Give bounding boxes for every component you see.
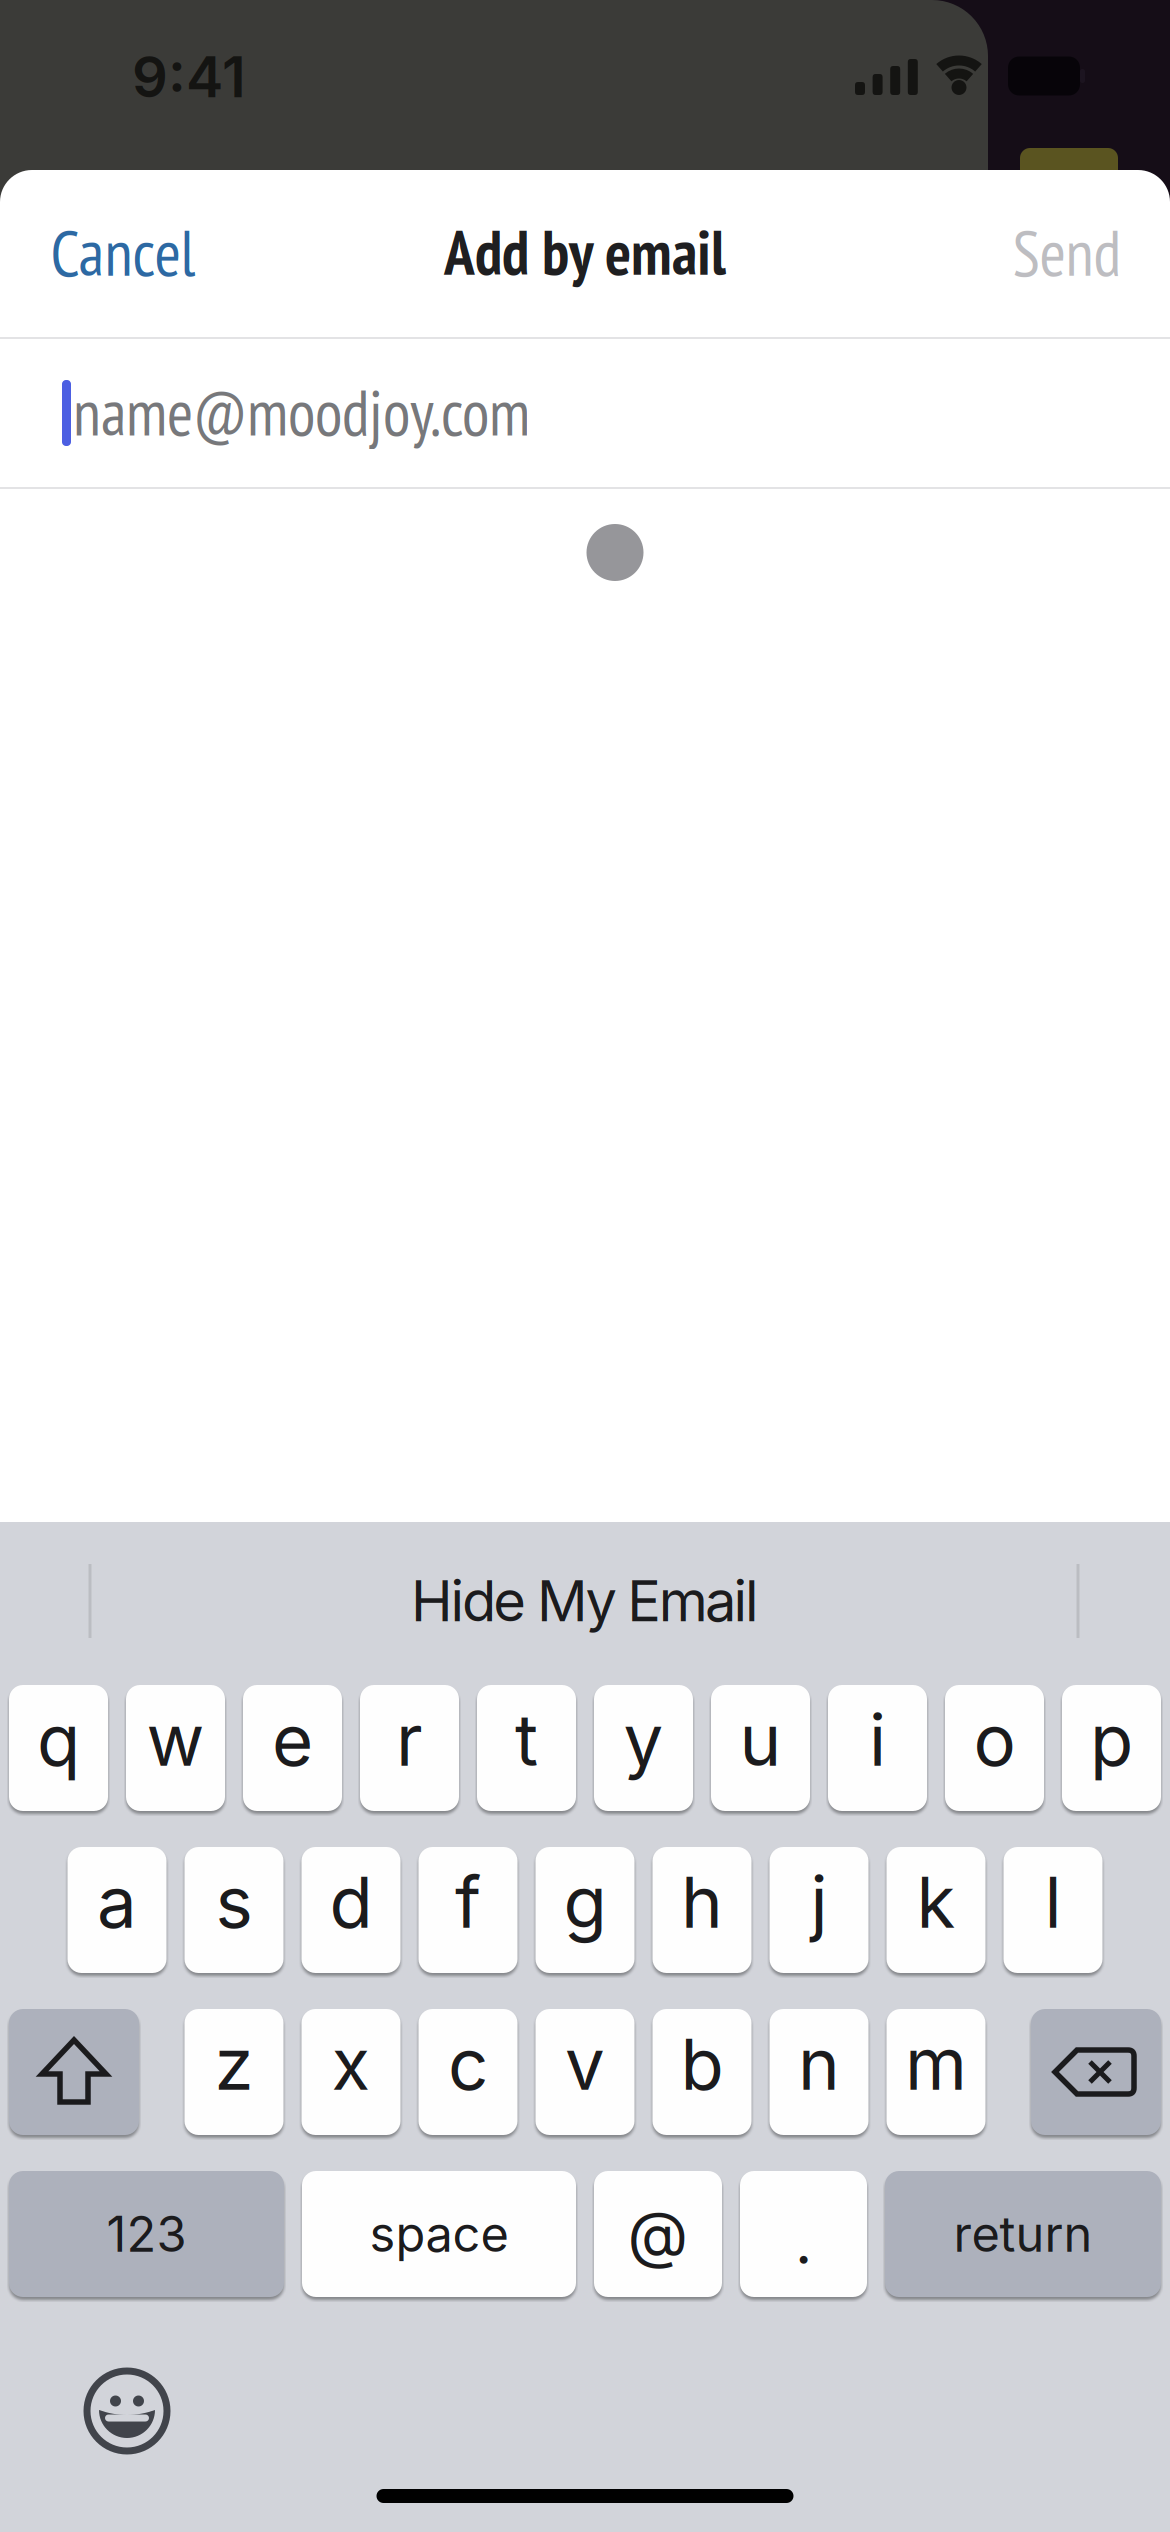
button[interactable]: d — [301, 1847, 400, 1973]
button[interactable]: Hide My Email — [95, 1521, 1075, 1681]
staticText: u — [739, 1697, 781, 1783]
button[interactable] — [1031, 2009, 1161, 2135]
staticText: q — [37, 1697, 80, 1783]
staticText: f — [455, 1859, 481, 1945]
button[interactable]: v — [535, 2009, 634, 2135]
button[interactable] — [84, 2368, 170, 2454]
staticText: name@moodjoy.com — [73, 371, 530, 453]
staticText: m — [905, 2021, 967, 2107]
staticText: b — [680, 2021, 723, 2107]
staticText: Cancel — [50, 211, 195, 293]
staticText: 9:41 — [132, 43, 246, 111]
button[interactable]: q — [9, 1685, 108, 1811]
staticText: h — [681, 1859, 723, 1945]
button[interactable]: e — [243, 1685, 342, 1811]
button[interactable]: @ — [594, 2171, 722, 2297]
button[interactable]: k — [886, 1847, 985, 1973]
button[interactable]: return — [885, 2171, 1161, 2297]
staticText: Send — [1012, 211, 1121, 293]
button[interactable]: s — [184, 1847, 283, 1973]
staticText: Add by email — [444, 212, 726, 292]
staticText: i — [869, 1697, 886, 1783]
button[interactable]: 123 — [9, 2171, 284, 2297]
button[interactable]: g — [535, 1847, 634, 1973]
staticText: j — [810, 1859, 827, 1945]
staticText: . — [795, 2206, 812, 2278]
staticText: Hide My Email — [411, 1567, 759, 1635]
staticText: z — [214, 2021, 253, 2107]
button[interactable]: y — [594, 1685, 693, 1811]
staticText: @ — [627, 2196, 688, 2272]
staticText: d — [329, 1859, 372, 1945]
button[interactable]: r — [360, 1685, 459, 1811]
staticText: e — [272, 1697, 313, 1783]
button[interactable]: Cancel — [50, 211, 195, 293]
staticText: c — [448, 2021, 488, 2107]
button[interactable]: b — [652, 2009, 751, 2135]
staticText: l — [1044, 1859, 1061, 1945]
staticText: s — [215, 1859, 252, 1945]
staticText: space — [369, 2205, 508, 2263]
button[interactable]: n — [769, 2009, 868, 2135]
button[interactable]: z — [184, 2009, 283, 2135]
staticText: return — [953, 2205, 1092, 2263]
staticText: v — [565, 2021, 605, 2107]
staticText: p — [1090, 1697, 1133, 1783]
button[interactable]: . — [740, 2171, 867, 2297]
button[interactable]: j — [769, 1847, 868, 1973]
staticText: n — [798, 2021, 840, 2107]
button[interactable]: l — [1003, 1847, 1102, 1973]
staticText: k — [916, 1859, 955, 1945]
staticText: r — [396, 1697, 423, 1783]
button[interactable]: x — [301, 2009, 400, 2135]
staticText: 123 — [106, 2205, 186, 2263]
button[interactable]: name@moodjoy.com — [0, 337, 1170, 487]
staticText: x — [331, 2021, 370, 2107]
button[interactable]: u — [711, 1685, 810, 1811]
button[interactable]: Send — [1012, 211, 1121, 293]
button[interactable]: h — [652, 1847, 751, 1973]
staticText: o — [973, 1697, 1015, 1783]
button[interactable]: a — [67, 1847, 166, 1973]
staticText: g — [563, 1859, 606, 1945]
button[interactable]: i — [828, 1685, 927, 1811]
button[interactable]: t — [477, 1685, 576, 1811]
staticText: y — [623, 1697, 663, 1783]
staticText: w — [146, 1697, 204, 1783]
button[interactable]: f — [418, 1847, 517, 1973]
button[interactable]: m — [886, 2009, 985, 2135]
staticText: a — [97, 1859, 137, 1945]
button[interactable]: p — [1062, 1685, 1161, 1811]
button[interactable] — [9, 2009, 139, 2135]
button[interactable]: o — [945, 1685, 1044, 1811]
button[interactable]: space — [302, 2171, 576, 2297]
staticText: t — [515, 1697, 538, 1783]
button[interactable]: w — [126, 1685, 225, 1811]
button[interactable]: c — [418, 2009, 517, 2135]
